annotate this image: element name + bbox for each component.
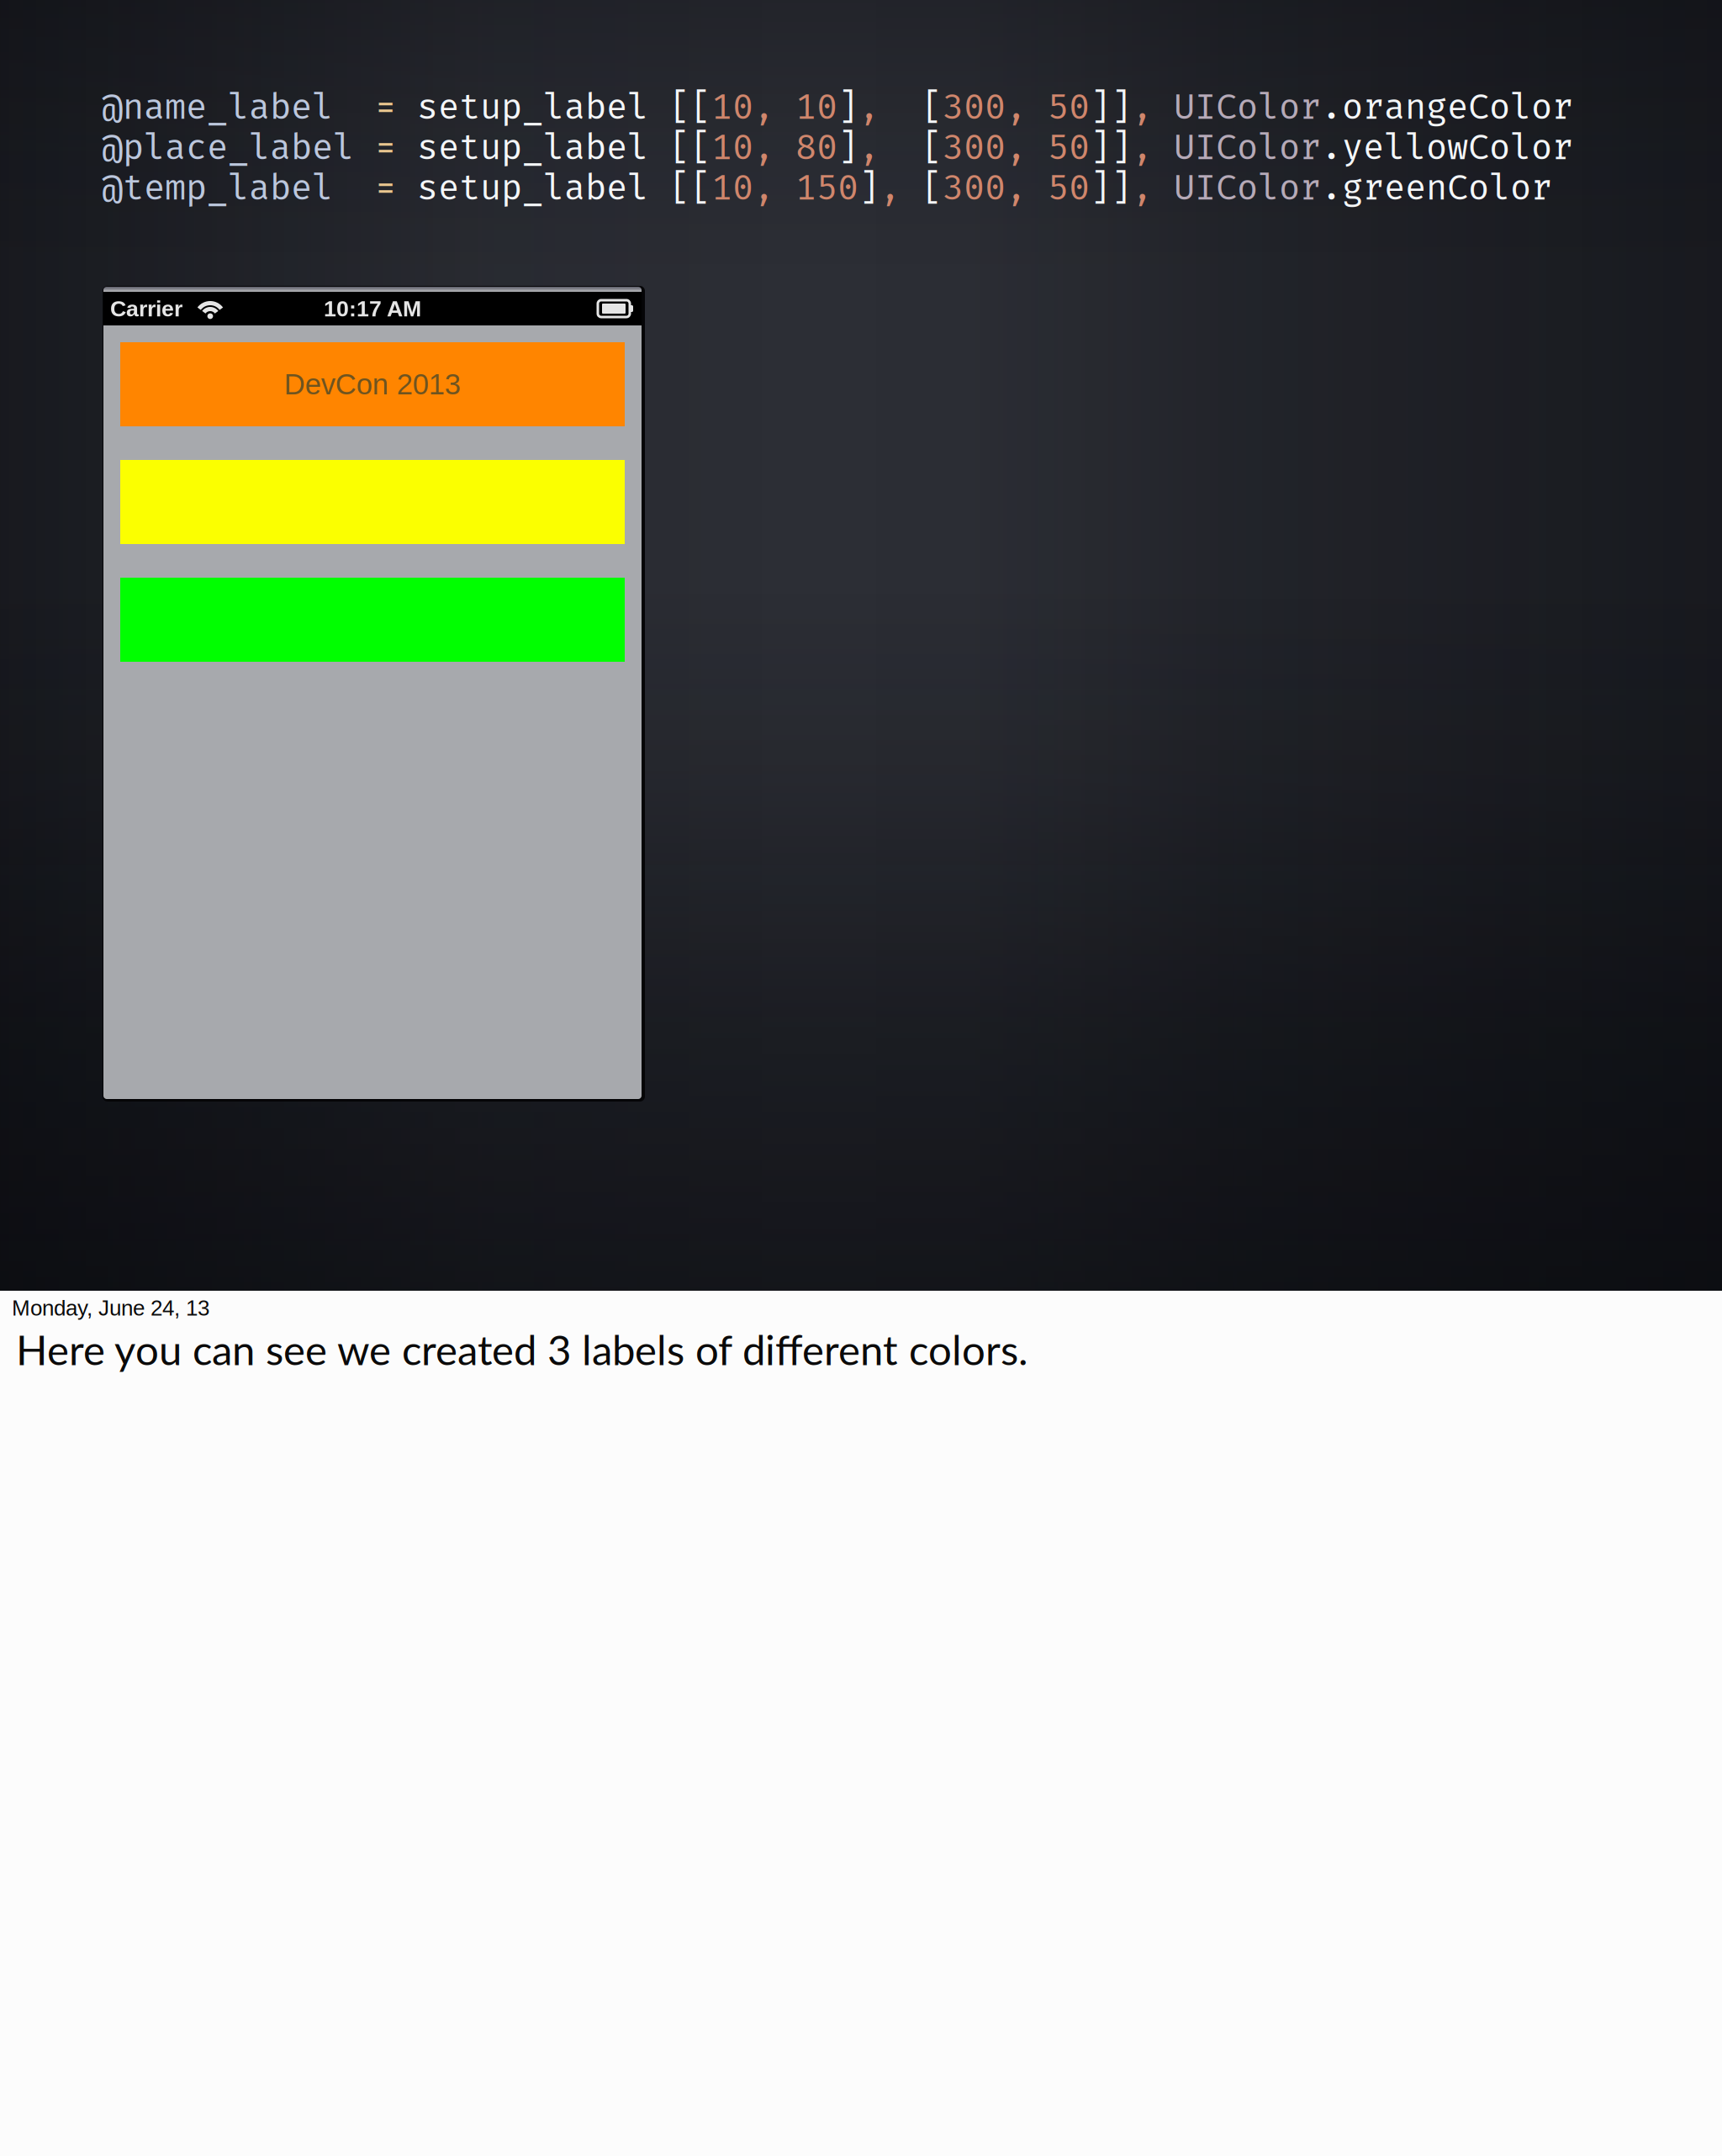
staticText: ]] <box>1090 86 1132 128</box>
staticText: 300 <box>943 126 1006 169</box>
staticText: UIColor <box>1174 166 1321 209</box>
staticText: , <box>753 86 795 128</box>
staticText: , <box>1132 126 1153 169</box>
staticText: , <box>1006 86 1048 128</box>
staticText: , <box>858 126 879 169</box>
staticText: [ <box>922 86 943 128</box>
staticText: 80 <box>795 126 837 169</box>
staticText: 10 <box>711 126 753 169</box>
staticText: , <box>1132 166 1153 209</box>
staticText: setup_label [[ <box>396 126 711 169</box>
staticText: 150 <box>795 166 858 209</box>
staticText: @name_label <box>102 86 333 128</box>
staticText: , <box>1006 126 1048 169</box>
staticText: , <box>858 86 879 128</box>
staticText: ] <box>837 126 858 169</box>
staticText: setup_label [[ <box>396 166 711 209</box>
staticText: ] <box>858 166 879 209</box>
staticText: 10 <box>711 166 753 209</box>
staticText: 300 <box>943 86 1006 128</box>
staticText: DevCon 2013 <box>284 368 461 401</box>
staticText: @place_label <box>102 126 354 169</box>
staticText: 50 <box>1048 166 1090 209</box>
staticText: , <box>753 166 795 209</box>
staticText: 300 <box>943 166 1006 209</box>
staticText: UIColor <box>1174 86 1321 128</box>
staticText: , <box>1132 86 1153 128</box>
staticText: [ <box>922 166 943 209</box>
staticText: ]] <box>1090 166 1132 209</box>
staticText: @temp_label <box>102 166 333 209</box>
staticText: , <box>753 126 795 169</box>
staticText: 50 <box>1048 86 1090 128</box>
staticText: Here you can see we created 3 labels of … <box>16 1324 1028 1374</box>
staticText: = <box>375 126 396 169</box>
staticText: , <box>1006 166 1048 209</box>
staticText: .orangeColor <box>1321 86 1573 128</box>
staticText: .greenColor <box>1321 166 1552 209</box>
staticText: , <box>879 166 901 209</box>
staticText: [ <box>922 126 943 169</box>
staticText: Carrier <box>110 296 182 321</box>
staticText: .yellowColor <box>1321 126 1573 169</box>
staticText: ]] <box>1090 126 1132 169</box>
staticText: Monday, June 24, 13 <box>12 1296 209 1320</box>
staticText: ] <box>837 86 858 128</box>
staticText: 10 <box>711 86 753 128</box>
staticText: setup_label [[ <box>396 86 711 128</box>
staticText: UIColor <box>1174 126 1321 169</box>
staticText: 10:17 AM <box>324 296 421 321</box>
staticText: = <box>375 86 396 128</box>
staticText: = <box>375 166 396 209</box>
staticText: 50 <box>1048 126 1090 169</box>
staticText: 10 <box>795 86 837 128</box>
